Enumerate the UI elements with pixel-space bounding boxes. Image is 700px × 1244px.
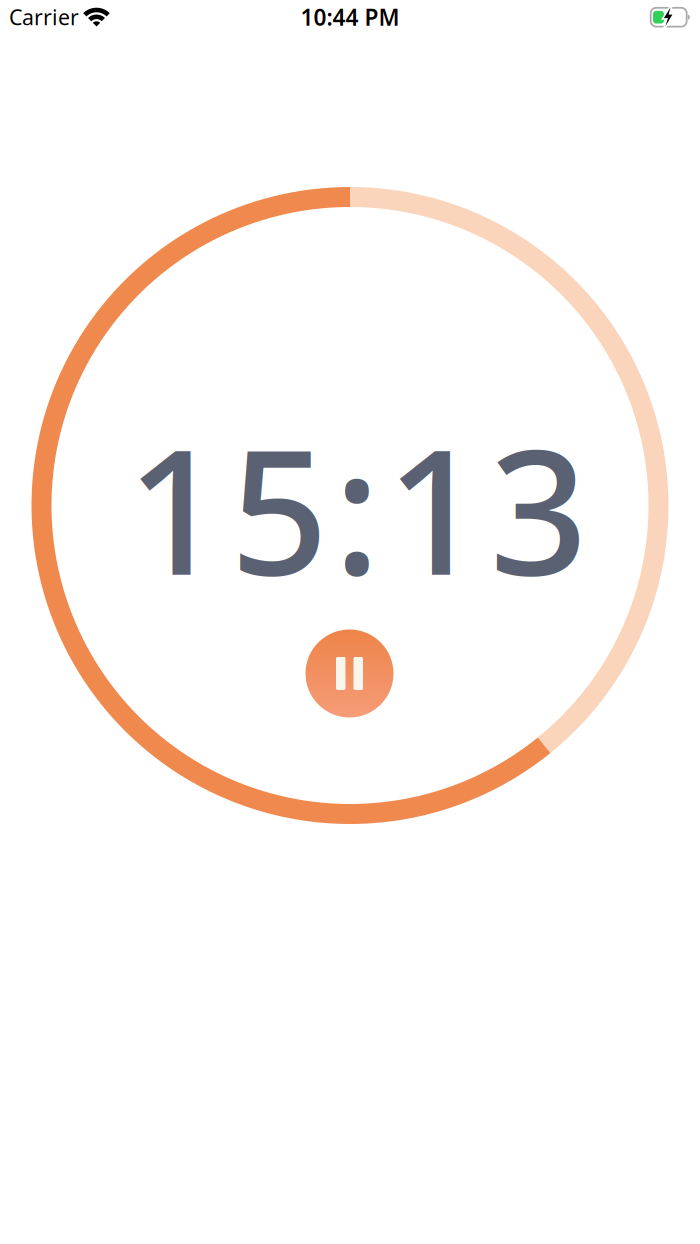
- staticText: Carrier: [9, 3, 79, 31]
- button[interactable]: [305, 629, 393, 717]
- staticText: 15:13: [126, 394, 587, 622]
- staticText: 10:44 PM: [300, 2, 399, 32]
